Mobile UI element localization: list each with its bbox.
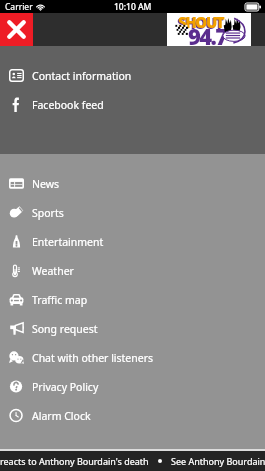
staticText: Song request [32,322,98,336]
button[interactable]: Contact information [0,61,265,90]
button[interactable]: Alarm Clock [0,401,265,430]
staticText: Sports [32,206,64,220]
staticText: Traffic map [32,293,88,307]
staticText: SHOUT [178,12,224,32]
button[interactable]: Traffic map [0,285,265,314]
button[interactable]: Close [0,13,33,46]
button[interactable]: Entertainment [0,227,265,256]
staticText: Chat with other listeners [32,351,154,365]
staticText: Facebook feed [32,98,104,112]
staticText: reacts to Anthony Bourdain's death [0,455,149,467]
staticText: Alarm Clock [32,409,91,423]
button[interactable]: Sports [0,198,265,227]
button[interactable]: News [0,169,265,198]
staticText: Carrier [5,1,33,13]
button[interactable]: Weather [0,256,265,285]
staticText: SHOUT [177,13,223,33]
staticText: News [32,177,59,191]
staticText: Entertainment [32,235,104,249]
button[interactable]: Privacy Policy [0,372,265,401]
button[interactable]: Chat with other listeners [0,343,265,372]
staticText: Contact information [32,69,132,83]
staticText: Weather [32,264,74,278]
staticText: Privacy Policy [32,380,99,394]
staticText: 94.7 [188,21,227,51]
staticText: See Anthony Bourdain's best moments [171,455,265,467]
button[interactable]: Song request [0,314,265,343]
button[interactable]: Facebook feed [0,90,265,119]
staticText: 10:10 AM [114,1,152,13]
